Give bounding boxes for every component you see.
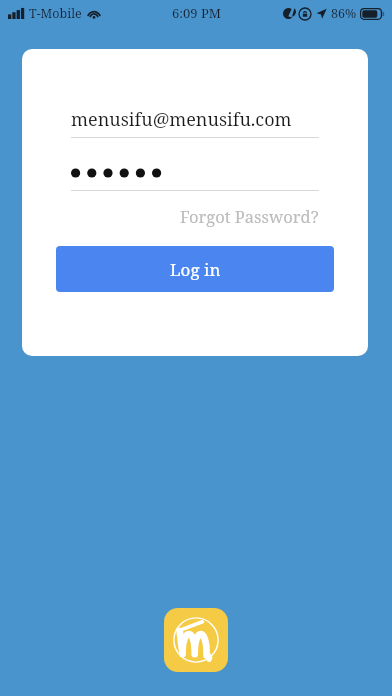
staticText: menusifu@menusifu.com bbox=[71, 107, 292, 132]
staticText: Forgot Password? bbox=[180, 205, 319, 227]
staticText: 86% bbox=[331, 5, 357, 22]
other: MenuSifu logo bbox=[164, 608, 228, 672]
button[interactable]: Forgot Password? bbox=[180, 200, 319, 232]
button[interactable] bbox=[71, 156, 319, 190]
staticText: 6:09 PM bbox=[172, 4, 221, 22]
button[interactable]: menusifu@menusifu.com bbox=[71, 101, 319, 137]
staticText: T-Mobile bbox=[29, 5, 82, 22]
staticText: Log in bbox=[170, 258, 221, 281]
button[interactable]: Log in bbox=[56, 246, 334, 292]
